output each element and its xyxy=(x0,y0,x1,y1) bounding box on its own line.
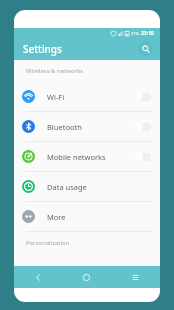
staticText: Mobile networks xyxy=(47,152,106,162)
button[interactable]: Search xyxy=(138,41,153,56)
staticText: Wireless & networks xyxy=(26,67,84,75)
button[interactable]: Bluetooth xyxy=(14,112,160,141)
button[interactable]: Wi-Fi xyxy=(14,82,160,111)
staticText: Wi-Fi xyxy=(47,92,65,102)
staticText: Bluetooth xyxy=(47,122,82,132)
button[interactable]: Data usage xyxy=(14,172,160,201)
button[interactable]: Back xyxy=(14,266,62,288)
button[interactable]: Recents xyxy=(111,266,160,288)
staticText: 23:10 xyxy=(141,30,154,37)
button[interactable]: More xyxy=(14,202,160,231)
staticText: More xyxy=(47,212,66,222)
staticText: Settings xyxy=(23,42,62,56)
button[interactable]: Home xyxy=(62,266,111,288)
staticText: Personalization xyxy=(26,239,70,247)
staticText: 21% xyxy=(131,31,139,36)
button[interactable]: Mobile networks xyxy=(14,142,160,171)
staticText: Data usage xyxy=(47,182,87,192)
